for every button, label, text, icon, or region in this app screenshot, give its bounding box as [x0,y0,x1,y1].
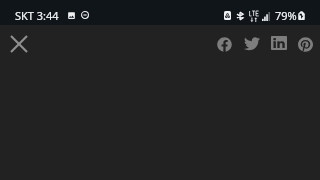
button[interactable]: Share on Facebook [210,30,238,58]
button[interactable]: Share on Pinterest [291,30,319,58]
button[interactable]: Share on LinkedIn [265,29,293,57]
staticText: SKT 3:44 [15,8,59,23]
button[interactable]: Share on Twitter [238,29,266,57]
button[interactable]: Close [5,30,32,57]
staticText: 79% [275,8,297,23]
